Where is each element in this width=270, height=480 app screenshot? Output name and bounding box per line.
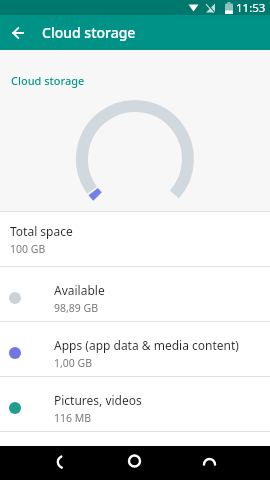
staticText: Available	[54, 282, 105, 298]
button[interactable]	[0, 15, 36, 50]
staticText: 100 GB	[10, 242, 46, 256]
staticText: Cloud storage	[11, 73, 85, 88]
button[interactable]	[0, 446, 90, 480]
staticText: Apps (app data & media content)	[54, 337, 239, 353]
button[interactable]: Apps (app data & media content)	[0, 322, 270, 376]
staticText: 11:53	[236, 0, 266, 15]
staticText: 98,89 GB	[54, 301, 99, 315]
button[interactable]: Total space	[0, 212, 270, 266]
staticText: 1,00 GB	[54, 356, 93, 370]
button[interactable]: Available	[0, 267, 270, 321]
staticText: Pictures, videos	[54, 392, 142, 408]
staticText: Cloud storage	[42, 23, 136, 42]
staticText: Total space	[10, 223, 73, 239]
button[interactable]	[180, 446, 270, 480]
button[interactable]	[90, 446, 180, 480]
button[interactable]: Pictures, videos	[0, 377, 270, 431]
staticText: 116 MB	[54, 411, 92, 425]
